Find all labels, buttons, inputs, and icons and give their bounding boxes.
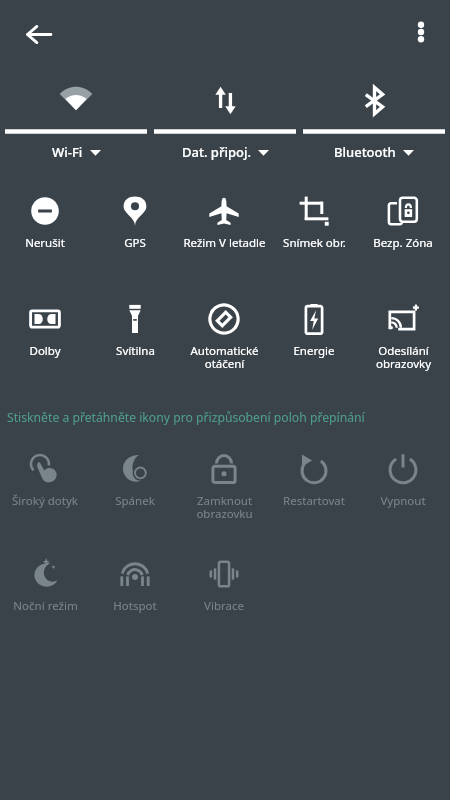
button[interactable]: Sleep [91,450,179,538]
button[interactable]: Wi-Fi [2,72,150,176]
staticText: Široký dotyk [12,493,78,509]
button[interactable]: Back [16,12,60,56]
button[interactable]: Hotspot [91,555,179,643]
staticText: Stiskněte a přetáhněte ikony pro přizpůs… [7,409,365,426]
staticText: Odesílání obrazovky [376,343,431,372]
button[interactable]: Screenshot [270,192,358,280]
staticText: Svítilna [116,343,155,359]
button[interactable]: GPS [91,192,179,280]
staticText: Dat. připoj. [182,143,251,161]
staticText: Wi-Fi [52,143,83,161]
staticText: Vibrace [204,598,244,614]
button[interactable]: Auto rotate [180,300,268,388]
staticText: Restartovat [283,493,345,509]
staticText: Režim V letadle [183,235,266,251]
button[interactable]: Restart [270,450,358,538]
button[interactable]: More options [400,11,442,53]
button[interactable]: Dolby [1,300,89,388]
staticText: Snímek obr. [283,235,346,251]
button[interactable]: Do not disturb [1,192,89,280]
button[interactable]: Screen cast [359,300,447,388]
button[interactable]: Vibrate [180,555,268,643]
button[interactable]: Airplane mode [180,192,268,280]
button[interactable]: Bluetooth [300,72,448,176]
staticText: Nerušit [25,235,65,251]
staticText: GPS [124,235,146,251]
button[interactable]: Wide touch [1,450,89,538]
staticText: Hotspot [113,598,157,614]
button[interactable]: Power off [359,450,447,538]
staticText: Vypnout [380,493,426,509]
staticText: Bezp. Zóna [373,235,433,251]
staticText: Bluetooth [334,143,396,161]
button[interactable]: Flashlight [91,300,179,388]
button[interactable]: Lock screen [180,450,268,538]
staticText: Automatické otáčení [190,343,259,372]
staticText: Dolby [29,343,61,359]
staticText: Zamknout obrazovku [196,493,253,522]
staticText: Energie [293,343,335,359]
button[interactable]: Mobile data [151,72,299,176]
button[interactable]: Safe zone [359,192,447,280]
staticText: Spánek [115,493,155,509]
button[interactable]: Night mode [1,555,89,643]
button[interactable]: Power saving [270,300,358,388]
staticText: Noční režim [13,598,78,614]
